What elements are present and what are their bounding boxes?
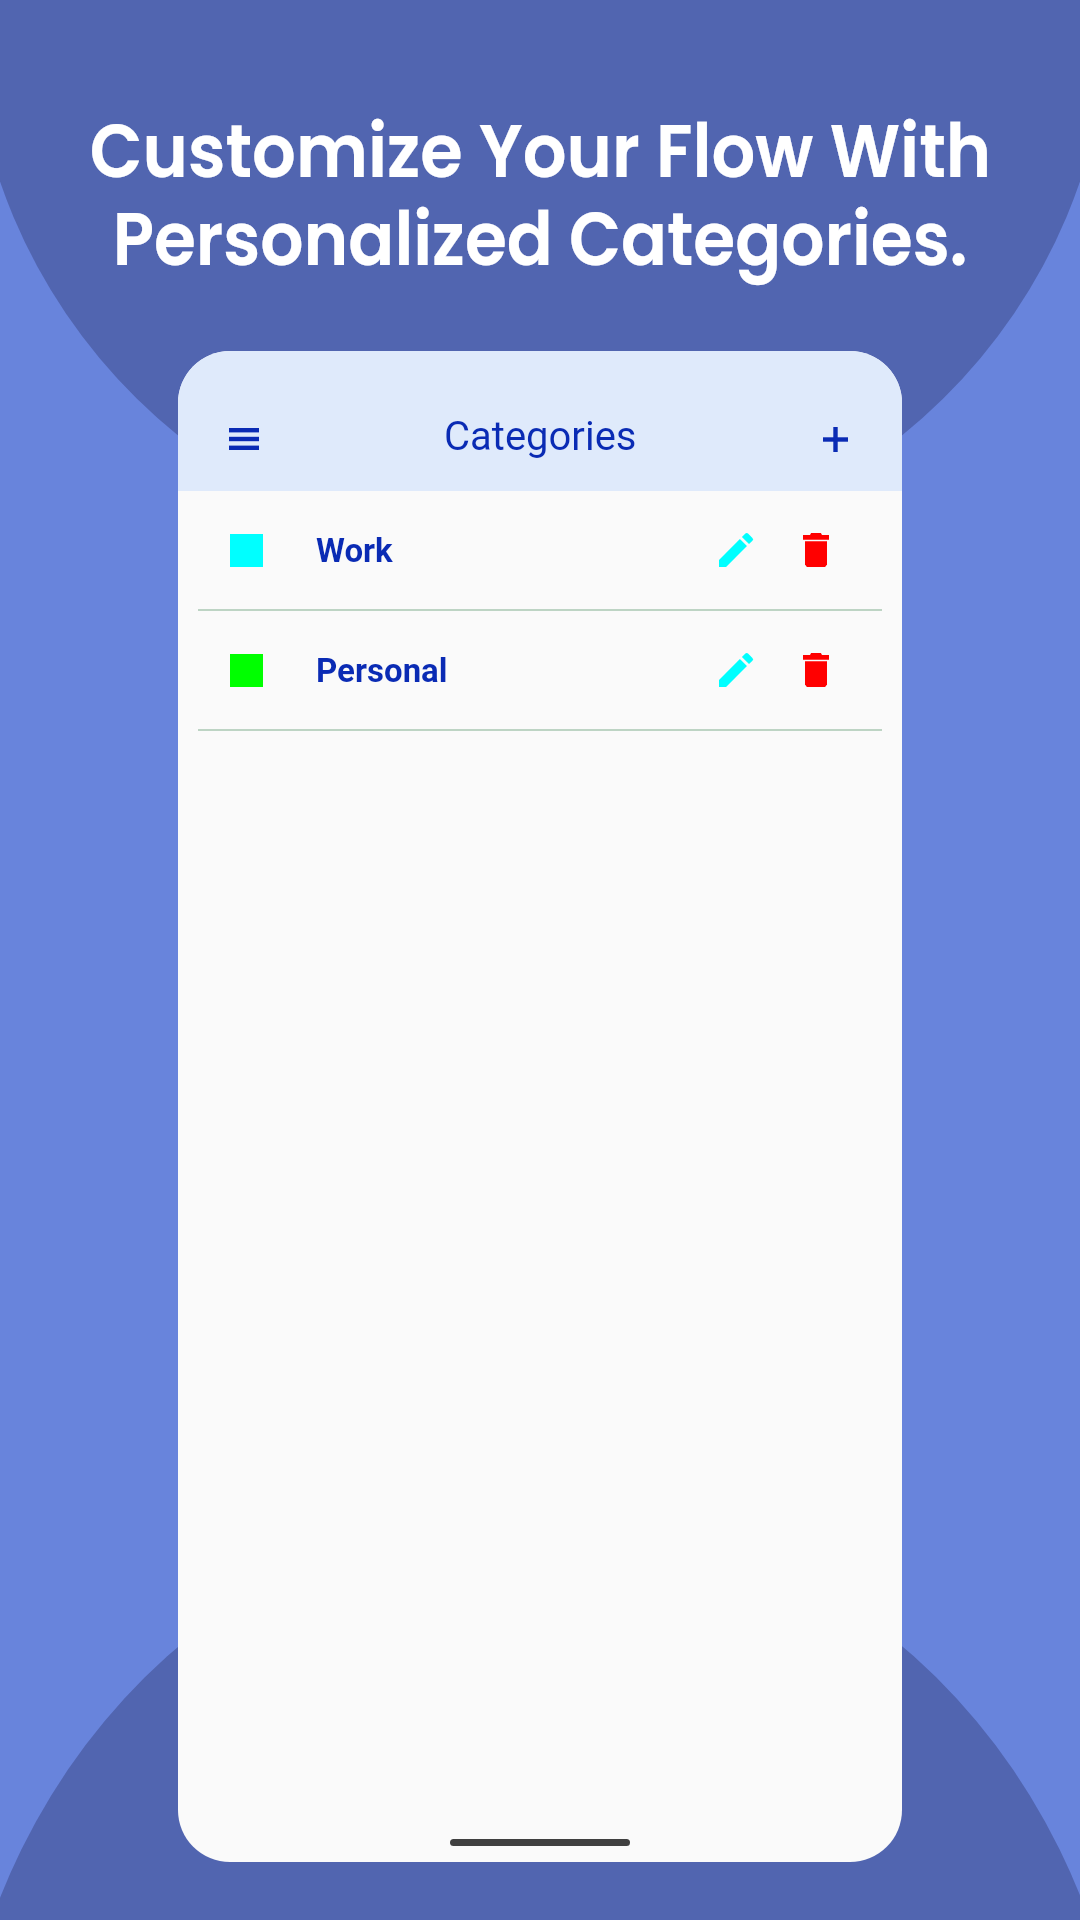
staticText: Personalized Categories.	[113, 187, 967, 291]
button[interactable]: Add category	[798, 411, 872, 467]
staticText: Personal	[316, 651, 448, 690]
button[interactable]: Personal	[178, 611, 902, 729]
staticText: Customize Your Flow With	[90, 99, 991, 203]
button[interactable]: Open navigation menu	[207, 411, 281, 467]
staticText: Work	[316, 531, 393, 570]
button[interactable]: Delete Work	[781, 515, 851, 585]
button[interactable]: Delete Personal	[781, 635, 851, 705]
button[interactable]: Work	[178, 491, 902, 609]
button[interactable]: Edit Work	[701, 515, 771, 585]
button[interactable]: Edit Personal	[701, 635, 771, 705]
staticText: Categories	[444, 413, 637, 460]
